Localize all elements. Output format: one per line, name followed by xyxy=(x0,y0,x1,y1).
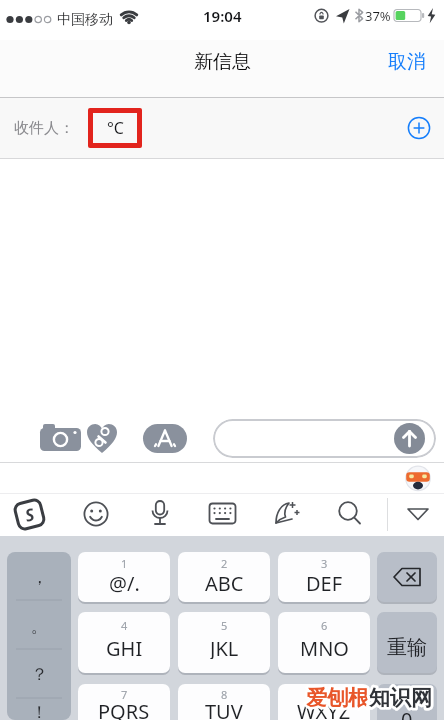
staticText: DEF xyxy=(306,570,343,594)
staticText: 知识网 xyxy=(369,685,432,711)
staticText: @/. xyxy=(109,570,140,594)
staticText: 8 xyxy=(221,687,228,699)
staticText: JKL xyxy=(210,635,239,659)
staticText: WXYZ xyxy=(297,698,351,720)
button[interactable] xyxy=(394,423,425,454)
button[interactable]: ！ xyxy=(7,702,71,720)
staticText: 新信息 xyxy=(194,50,251,74)
staticText: 2 xyxy=(221,556,228,568)
staticText: 37% xyxy=(365,7,391,25)
staticText: ABC xyxy=(205,570,244,594)
button[interactable] xyxy=(147,499,173,529)
button[interactable]: 7 xyxy=(78,684,170,720)
button[interactable] xyxy=(405,465,431,491)
button[interactable]: 收件人： xyxy=(0,98,444,158)
button[interactable] xyxy=(82,500,110,528)
staticText: S xyxy=(22,502,38,527)
staticText: 爱刨根 xyxy=(306,685,369,711)
staticText: 爱刨根 xyxy=(306,685,369,711)
staticText: ， xyxy=(31,567,48,588)
button[interactable] xyxy=(406,115,432,141)
staticText: MNO xyxy=(300,635,349,659)
staticText: 知识网 xyxy=(369,685,432,711)
staticText: GHI xyxy=(106,635,143,659)
staticText: °C xyxy=(107,117,124,139)
button[interactable]: 4 xyxy=(78,612,170,673)
button[interactable]: 6 xyxy=(278,612,370,673)
button[interactable] xyxy=(404,504,432,524)
staticText: 1 xyxy=(121,556,128,568)
button[interactable]: ， xyxy=(7,554,71,600)
button[interactable] xyxy=(336,500,364,528)
button[interactable]: 2 xyxy=(178,552,270,602)
button[interactable] xyxy=(377,552,437,602)
staticText: 9 xyxy=(321,687,328,699)
staticText: 5 xyxy=(221,618,228,630)
staticText: 收件人： xyxy=(14,119,74,138)
button[interactable] xyxy=(213,419,436,458)
button[interactable]: 重输 xyxy=(377,612,437,673)
staticText: 19:04 xyxy=(203,6,242,26)
button[interactable]: 。 xyxy=(7,604,71,648)
staticText: TUV xyxy=(205,698,243,720)
staticText: 4 xyxy=(121,618,128,630)
button[interactable] xyxy=(143,424,188,454)
staticText: 7 xyxy=(121,687,128,699)
button[interactable]: S xyxy=(12,497,47,532)
button[interactable]: 8 xyxy=(178,684,270,720)
staticText: 重输 xyxy=(387,635,427,660)
button[interactable]: 1 xyxy=(78,552,170,602)
button[interactable]: 取消 xyxy=(382,48,432,76)
button[interactable] xyxy=(86,423,120,455)
staticText: 中国移动 xyxy=(57,11,113,28)
staticText: 3 xyxy=(321,556,328,568)
button[interactable]: ？ xyxy=(7,652,71,696)
staticText: 0 xyxy=(401,706,413,720)
button[interactable] xyxy=(272,499,302,529)
staticText: 。 xyxy=(31,616,48,637)
button[interactable]: 9 xyxy=(278,684,370,720)
staticText: ！ xyxy=(31,702,48,720)
staticText: 6 xyxy=(321,618,328,630)
button[interactable]: 5 xyxy=(178,612,270,673)
button[interactable] xyxy=(208,502,238,526)
staticText: ？ xyxy=(31,664,48,685)
button[interactable]: 3 xyxy=(278,552,370,602)
staticText: 取消 xyxy=(388,50,426,74)
staticText: PQRS xyxy=(98,698,150,720)
button[interactable] xyxy=(36,421,84,455)
button[interactable]: 0 xyxy=(377,684,437,720)
